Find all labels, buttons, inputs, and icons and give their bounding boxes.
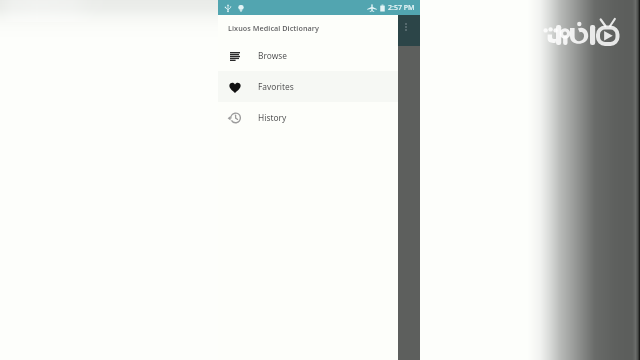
button[interactable]: History — [218, 102, 398, 133]
button[interactable]: Browse — [218, 40, 398, 71]
button[interactable]: More options — [399, 20, 413, 34]
staticText: 2:57 PM — [388, 3, 415, 13]
button[interactable]: Favorites — [218, 71, 398, 102]
staticText: Lixuos Medical Dictionary — [228, 23, 319, 33]
staticText: Favorites — [258, 81, 294, 92]
staticText: History — [258, 112, 287, 123]
staticText: Browse — [258, 50, 288, 61]
